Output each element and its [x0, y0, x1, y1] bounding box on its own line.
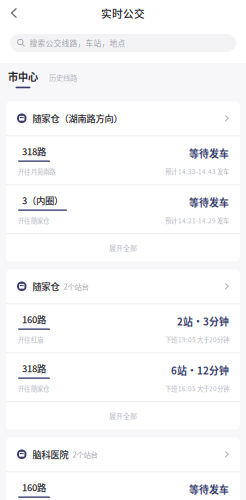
staticText: 展开全部: [109, 411, 137, 421]
staticText: 160路: [22, 312, 46, 326]
staticText: 318路: [22, 144, 46, 158]
button[interactable]: 318路: [6, 353, 240, 401]
staticText: 预计 14:21-14:29 发车: [165, 216, 229, 225]
staticText: 随家仓: [32, 280, 59, 293]
button[interactable]: 市中心: [0, 69, 47, 88]
staticText: 等待发车: [189, 146, 229, 160]
button[interactable]: 返回: [2, 1, 26, 25]
button[interactable]: 160路: [6, 472, 240, 500]
staticText: 开往 月苑南路: [18, 167, 55, 176]
staticText: 搜索公交线路，车站，地点: [29, 37, 125, 49]
button[interactable]: 160路: [6, 304, 240, 352]
staticText: 开往 随家仓: [18, 216, 49, 225]
staticText: 随家仓（湖南路方向）: [32, 112, 122, 125]
staticText: 等待发车: [189, 195, 229, 209]
button[interactable]: 历史线路: [47, 72, 79, 88]
button[interactable]: 脑科医院: [6, 437, 240, 471]
button[interactable]: 318路: [6, 136, 240, 184]
staticText: 实时公交: [101, 5, 145, 21]
staticText: 历史线路: [49, 72, 77, 83]
button[interactable]: 随家仓: [6, 269, 240, 303]
staticText: 市中心: [8, 69, 38, 84]
staticText: 2站·3分钟: [177, 314, 229, 328]
staticText: 2个站台: [72, 449, 97, 460]
staticText: 脑科医院: [32, 448, 68, 461]
staticText: 开往 红庙: [18, 335, 43, 344]
staticText: 下班 16:05 大于20分钟: [165, 384, 229, 393]
button[interactable]: 展开全部: [6, 402, 240, 429]
staticText: 下班 19:05 大于20分钟: [165, 335, 229, 344]
staticText: 3（内圈）: [22, 193, 63, 207]
button[interactable]: 展开全部: [6, 234, 240, 261]
staticText: 160路: [22, 480, 46, 494]
staticText: 开往 随家仓: [18, 384, 49, 393]
staticText: 预计 14:33-14:43 发车: [165, 167, 229, 176]
button[interactable]: 随家仓（湖南路方向）: [6, 101, 240, 135]
staticText: 展开全部: [109, 243, 137, 253]
staticText: 等待发车: [189, 482, 229, 496]
staticText: 2个站台: [63, 281, 88, 292]
button[interactable]: 搜索公交线路，车站，地点: [10, 34, 236, 52]
staticText: 318路: [22, 361, 46, 375]
staticText: 6站·12分钟: [171, 363, 229, 377]
button[interactable]: 3（内圈）: [6, 185, 240, 233]
